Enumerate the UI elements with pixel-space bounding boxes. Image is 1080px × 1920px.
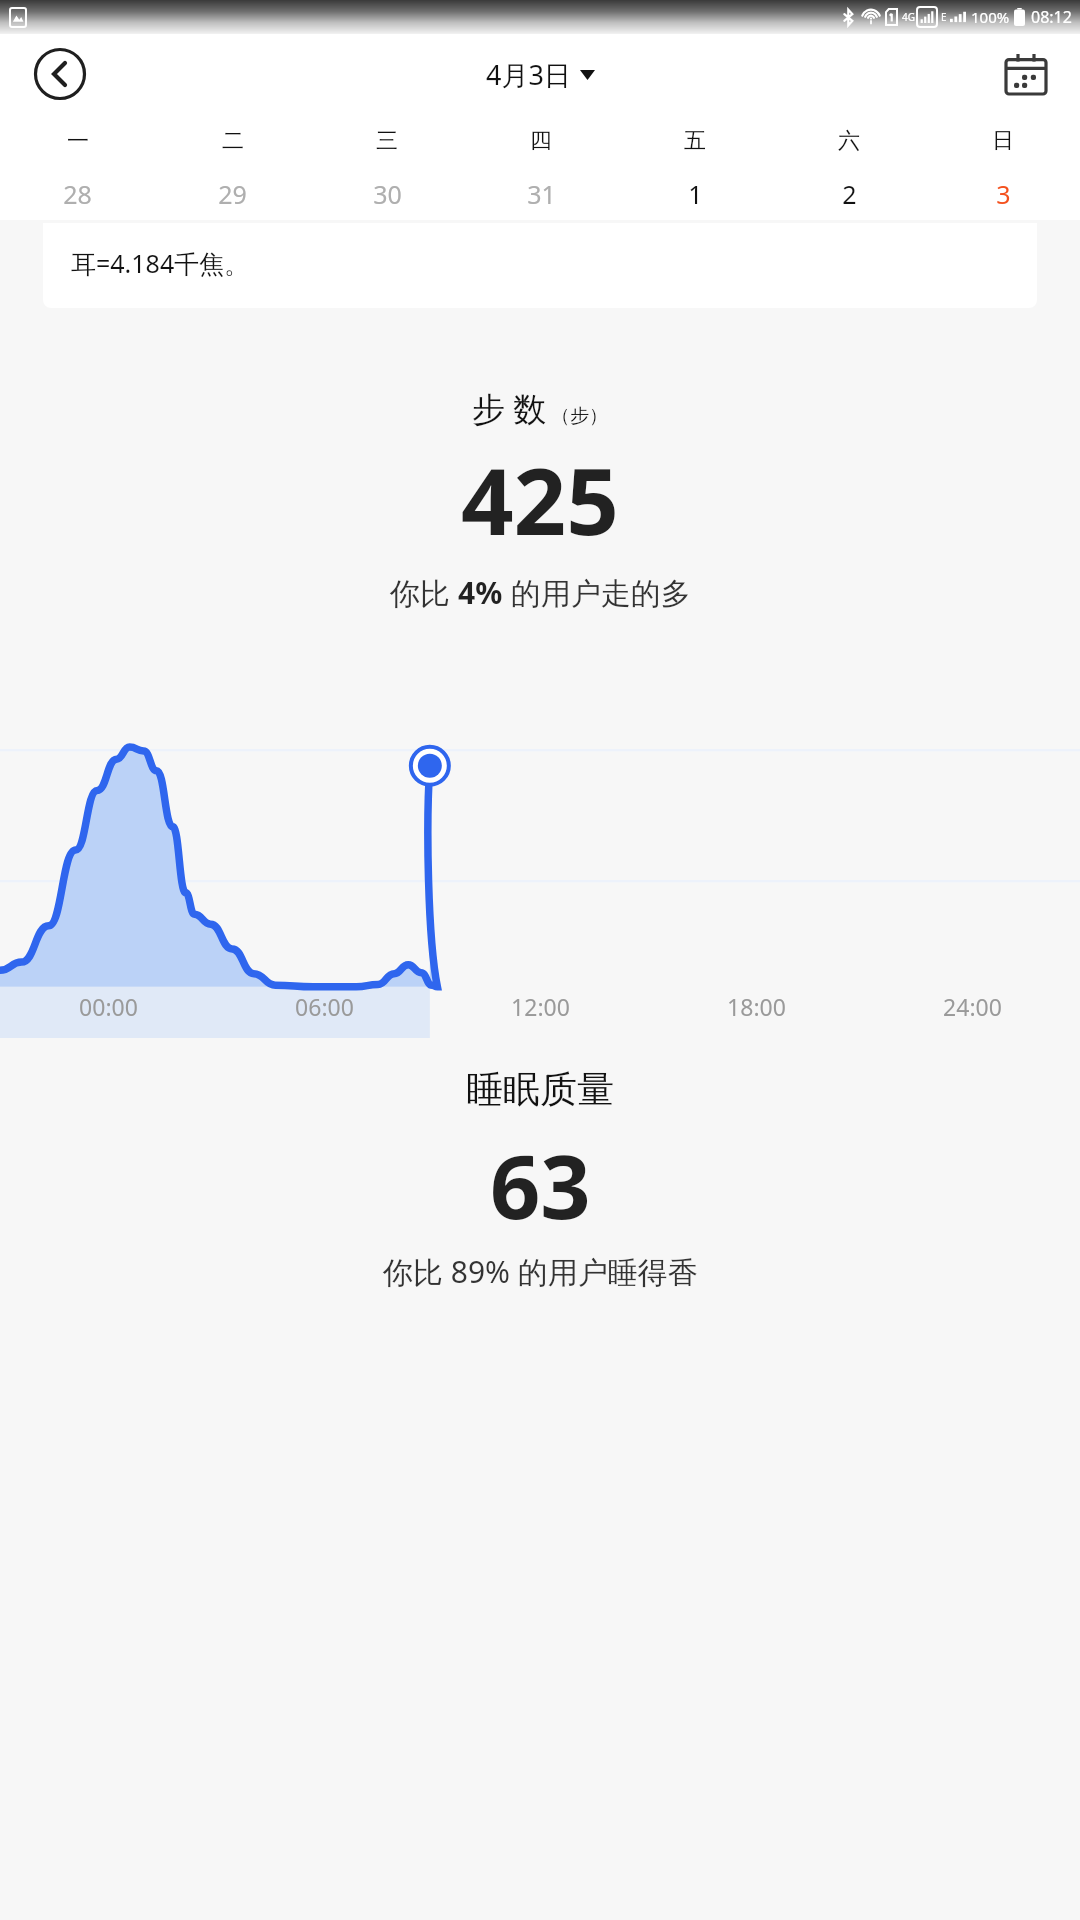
staticText: 五 [684,127,706,155]
button[interactable]: Calendar [1000,48,1052,100]
button[interactable]: 一 [0,114,155,168]
staticText: 你比 89% 的用户睡得香 [383,1251,698,1292]
staticText: 425 [461,437,619,562]
staticText: 步 数 [472,386,547,431]
button[interactable]: 2 [772,168,926,220]
staticText: 睡眠质量 [466,1066,614,1113]
staticText: 28 [63,177,92,211]
button[interactable]: 1 [618,168,772,220]
button[interactable]: 3 [926,168,1080,220]
staticText: 24:00 [943,991,1002,1022]
staticText: E [941,10,947,24]
staticText: 4G [902,10,915,24]
staticText: 63 [490,1125,591,1245]
staticText: 二 [222,127,244,155]
staticText: 耳=4.184千焦。 [71,246,250,280]
staticText: 四 [530,127,552,155]
staticText: 你比 [390,572,458,613]
button[interactable]: 五 [618,114,772,168]
button[interactable]: 29 [155,168,310,220]
button[interactable]: 二 [155,114,310,168]
button[interactable]: 4月3日 [486,56,595,93]
staticText: 29 [218,177,247,211]
staticText: 100% [971,7,1010,27]
staticText: 30 [373,177,402,211]
staticText: 12:00 [511,991,570,1022]
staticText: 3 [996,177,1011,211]
staticText: 18:00 [727,991,786,1022]
button[interactable]: Back [34,48,86,100]
staticText: 06:00 [295,991,354,1022]
staticText: （步） [551,404,608,428]
button[interactable]: 三 [310,114,464,168]
staticText: 一 [67,127,89,155]
staticText: 08:12 [1031,6,1072,28]
staticText: 31 [527,177,556,211]
staticText: 4月3日 [486,56,571,93]
button[interactable]: 31 [464,168,618,220]
button[interactable]: 日 [926,114,1080,168]
staticText: 六 [838,127,860,155]
staticText: 三 [376,127,398,155]
staticText: 1 [688,177,703,211]
staticText: 00:00 [79,991,138,1022]
button[interactable]: 四 [464,114,618,168]
staticText: 的用户走的多 [503,572,691,613]
staticText: 日 [992,127,1014,155]
button[interactable]: 六 [772,114,926,168]
staticText: 2 [842,177,857,211]
button[interactable]: 28 [0,168,155,220]
staticText: 4% [458,572,503,613]
button[interactable]: 耳=4.184千焦。 [43,223,1037,308]
button[interactable]: 30 [310,168,464,220]
